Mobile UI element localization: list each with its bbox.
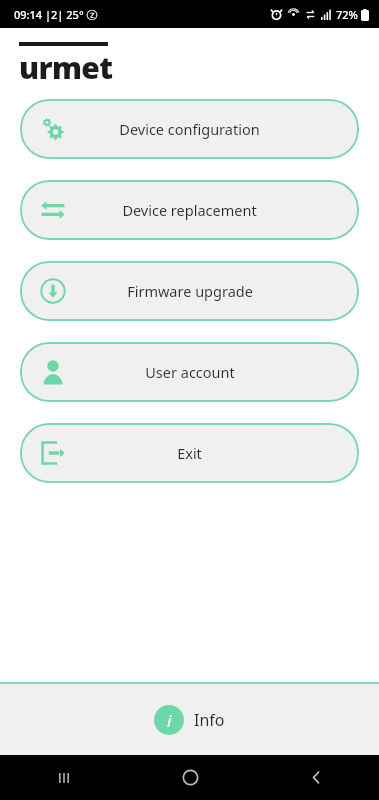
button[interactable]: Device replacement [20, 180, 359, 240]
staticText: 09:14 |2| 25° ⓩ [14, 7, 98, 22]
button[interactable]: Back [253, 755, 379, 800]
staticText: Exit [177, 443, 202, 463]
staticText: 72% [336, 7, 358, 22]
staticText: Info [194, 709, 225, 731]
button[interactable]: Home [127, 755, 253, 800]
button[interactable]: Recent apps [0, 755, 127, 800]
button[interactable]: i [0, 684, 379, 755]
button[interactable]: Device configuration [20, 99, 359, 159]
button[interactable]: Exit [20, 423, 359, 483]
staticText: Firmware upgrade [127, 281, 253, 301]
staticText: i [167, 709, 172, 732]
button[interactable]: Firmware upgrade [20, 261, 359, 321]
staticText: Device configuration [119, 119, 260, 139]
button[interactable]: User account [20, 342, 359, 402]
staticText: Device replacement [122, 200, 257, 220]
staticText: urmet [19, 47, 113, 80]
staticText: User account [145, 362, 235, 382]
